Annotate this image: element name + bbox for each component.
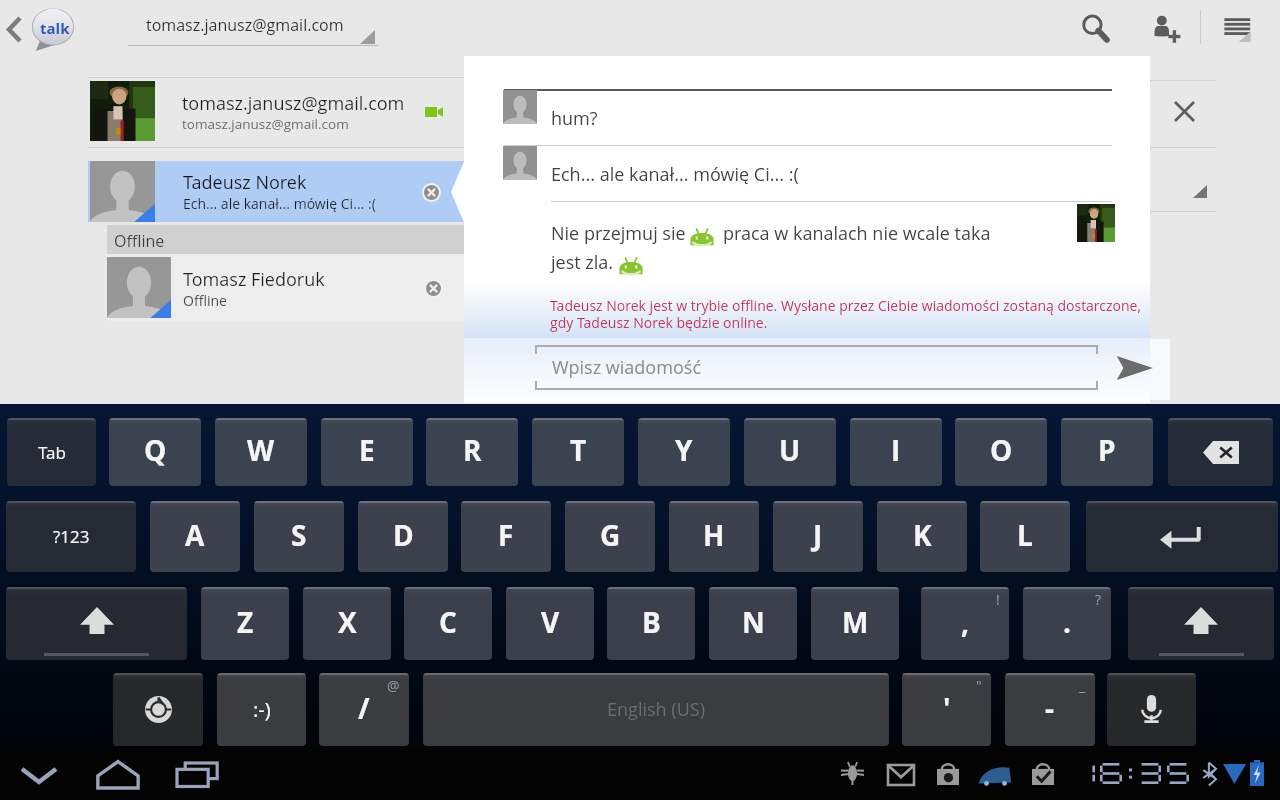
button[interactable]: I — [850, 418, 942, 486]
button[interactable]: Tadeusz Norek — [88, 161, 465, 222]
button[interactable]: Enter — [1086, 501, 1278, 572]
button[interactable]: ' — [902, 673, 991, 746]
button[interactable]: J — [773, 501, 863, 572]
button[interactable]: Y — [638, 418, 730, 486]
staticText: Wpisz wiadomość — [552, 355, 701, 380]
button[interactable]: Voice input — [1107, 673, 1196, 746]
button[interactable]: L — [980, 501, 1070, 572]
staticText: B — [642, 603, 661, 641]
button[interactable]: C — [404, 587, 492, 660]
staticText: Tomasz Fiedoruk — [183, 267, 325, 292]
staticText: praca w kanalach nie wcale taka — [723, 221, 991, 246]
staticText: Tab — [38, 441, 66, 464]
button[interactable]: English (US) — [423, 673, 889, 746]
button[interactable]: Z — [201, 587, 289, 660]
button[interactable]: Add friend — [1139, 2, 1193, 56]
button[interactable]: Change language — [113, 673, 203, 746]
button[interactable]: Recent apps — [166, 749, 228, 797]
button[interactable]: Send — [1114, 350, 1154, 386]
staticText: - — [1045, 689, 1055, 727]
staticText: Y — [675, 431, 693, 469]
button[interactable]: Home — [87, 749, 149, 797]
staticText: ? — [1095, 590, 1102, 609]
staticText: W — [247, 431, 275, 469]
button[interactable]: Tab — [7, 418, 96, 486]
button[interactable]: T — [532, 418, 624, 486]
button[interactable]: P — [1061, 418, 1153, 486]
button[interactable]: Tomasz Fiedoruk — [107, 254, 464, 321]
button[interactable]: Search — [1069, 2, 1123, 56]
staticText: Ech... ale kanał... mówię Ci... :( — [183, 194, 376, 213]
staticText: ?123 — [53, 525, 90, 548]
button[interactable]: W — [215, 418, 307, 486]
staticText: X — [338, 603, 357, 641]
staticText: Ech... ale kanał... mówię Ci... :( — [551, 162, 799, 187]
staticText: V — [541, 603, 560, 641]
button[interactable]: More options — [1213, 2, 1267, 56]
button[interactable]: Shift — [1128, 587, 1274, 660]
button[interactable]: X — [303, 587, 391, 660]
button[interactable]: M — [811, 587, 899, 660]
button[interactable]: Q — [109, 418, 201, 486]
button[interactable]: H — [669, 501, 759, 572]
staticText: T — [570, 431, 587, 469]
button[interactable]: ?123 — [6, 501, 136, 572]
staticText: E — [359, 431, 375, 469]
button[interactable]: G — [565, 501, 655, 572]
button[interactable]: tomasz.janusz@gmail.com — [0, 78, 464, 144]
button[interactable]: F — [461, 501, 551, 572]
button[interactable]: / — [319, 673, 409, 746]
staticText: M — [842, 603, 869, 641]
staticText: G — [600, 516, 621, 554]
button[interactable]: Close chat — [417, 178, 445, 206]
staticText: ! — [996, 590, 1000, 609]
button[interactable]: , — [921, 587, 1009, 660]
staticText: . — [1063, 603, 1071, 641]
staticText: I — [891, 431, 901, 469]
button[interactable]: Backspace — [1168, 418, 1273, 486]
button[interactable]: . — [1023, 587, 1111, 660]
staticText: A — [185, 516, 205, 554]
staticText: :-) — [253, 696, 271, 723]
button[interactable]: V — [506, 587, 594, 660]
staticText: tomasz.janusz@gmail.com — [182, 91, 405, 116]
button[interactable]: A — [150, 501, 240, 572]
staticText: Tadeusz Norek — [183, 170, 307, 195]
button[interactable]: B — [607, 587, 695, 660]
button[interactable]: K — [877, 501, 967, 572]
staticText: H — [703, 516, 725, 554]
staticText: tomasz.janusz@gmail.com — [146, 14, 344, 36]
button[interactable]: N — [709, 587, 797, 660]
button[interactable]: E — [321, 418, 413, 486]
staticText: F — [498, 516, 514, 554]
staticText: Q — [144, 431, 167, 469]
staticText: D — [393, 516, 414, 554]
button[interactable]: Talk — [31, 8, 75, 51]
button[interactable]: - — [1005, 673, 1095, 746]
staticText: Tadeusz Norek jest w trybie offline. Wys… — [550, 296, 1141, 315]
button[interactable]: Close chat — [419, 274, 447, 302]
button[interactable]: O — [955, 418, 1047, 486]
button[interactable]: Hide keyboard — [8, 749, 70, 797]
button[interactable]: S — [254, 501, 344, 572]
staticText: S — [291, 516, 307, 554]
staticText: " — [976, 676, 982, 695]
staticText: talk — [40, 18, 70, 38]
staticText: O — [990, 431, 1013, 469]
button[interactable]: :-) — [217, 673, 306, 746]
button[interactable]: Back — [0, 12, 28, 46]
staticText: jest zla. — [551, 250, 614, 275]
staticText: K — [913, 516, 932, 554]
button[interactable]: U — [744, 418, 836, 486]
staticText: _ — [1079, 676, 1086, 695]
staticText: L — [1017, 516, 1033, 554]
button[interactable]: D — [358, 501, 448, 572]
staticText: , — [961, 603, 970, 641]
staticText: gdy Tadeusz Norek będzie online. — [550, 313, 768, 332]
staticText: / — [358, 689, 370, 727]
staticText: Z — [237, 603, 254, 641]
button[interactable]: Shift — [6, 587, 187, 660]
button[interactable]: Close — [1170, 97, 1198, 125]
button[interactable]: R — [426, 418, 518, 486]
button[interactable]: tomasz.janusz@gmail.com — [128, 5, 378, 51]
